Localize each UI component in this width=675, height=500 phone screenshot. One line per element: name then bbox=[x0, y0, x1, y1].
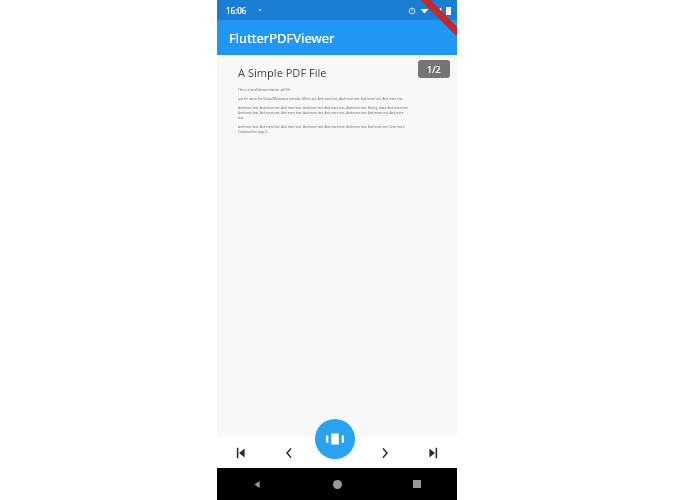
button[interactable]: Home bbox=[297, 468, 377, 500]
button[interactable]: Previous page bbox=[265, 437, 313, 468]
button[interactable]: Toggle page view bbox=[315, 419, 355, 459]
staticText: A Simple PDF File bbox=[238, 65, 327, 80]
staticText: And more text. And more text. And more t… bbox=[238, 125, 410, 134]
staticText: And more text. And more text. And more t… bbox=[238, 106, 410, 120]
staticText: 16:06 bbox=[226, 5, 247, 16]
button[interactable]: First page bbox=[217, 437, 265, 468]
staticText: just for use in the Virtual Mechanics tu… bbox=[238, 97, 410, 101]
button[interactable]: Next page bbox=[361, 437, 409, 468]
staticText: This is a small demonstration .pdf file … bbox=[238, 88, 410, 92]
staticText: FlutterPDFViewer bbox=[229, 29, 335, 47]
button[interactable]: Recent apps bbox=[377, 468, 457, 500]
button[interactable]: Last page bbox=[409, 437, 457, 468]
staticText: 1/2 bbox=[427, 63, 441, 75]
button[interactable]: Back bbox=[217, 468, 297, 500]
